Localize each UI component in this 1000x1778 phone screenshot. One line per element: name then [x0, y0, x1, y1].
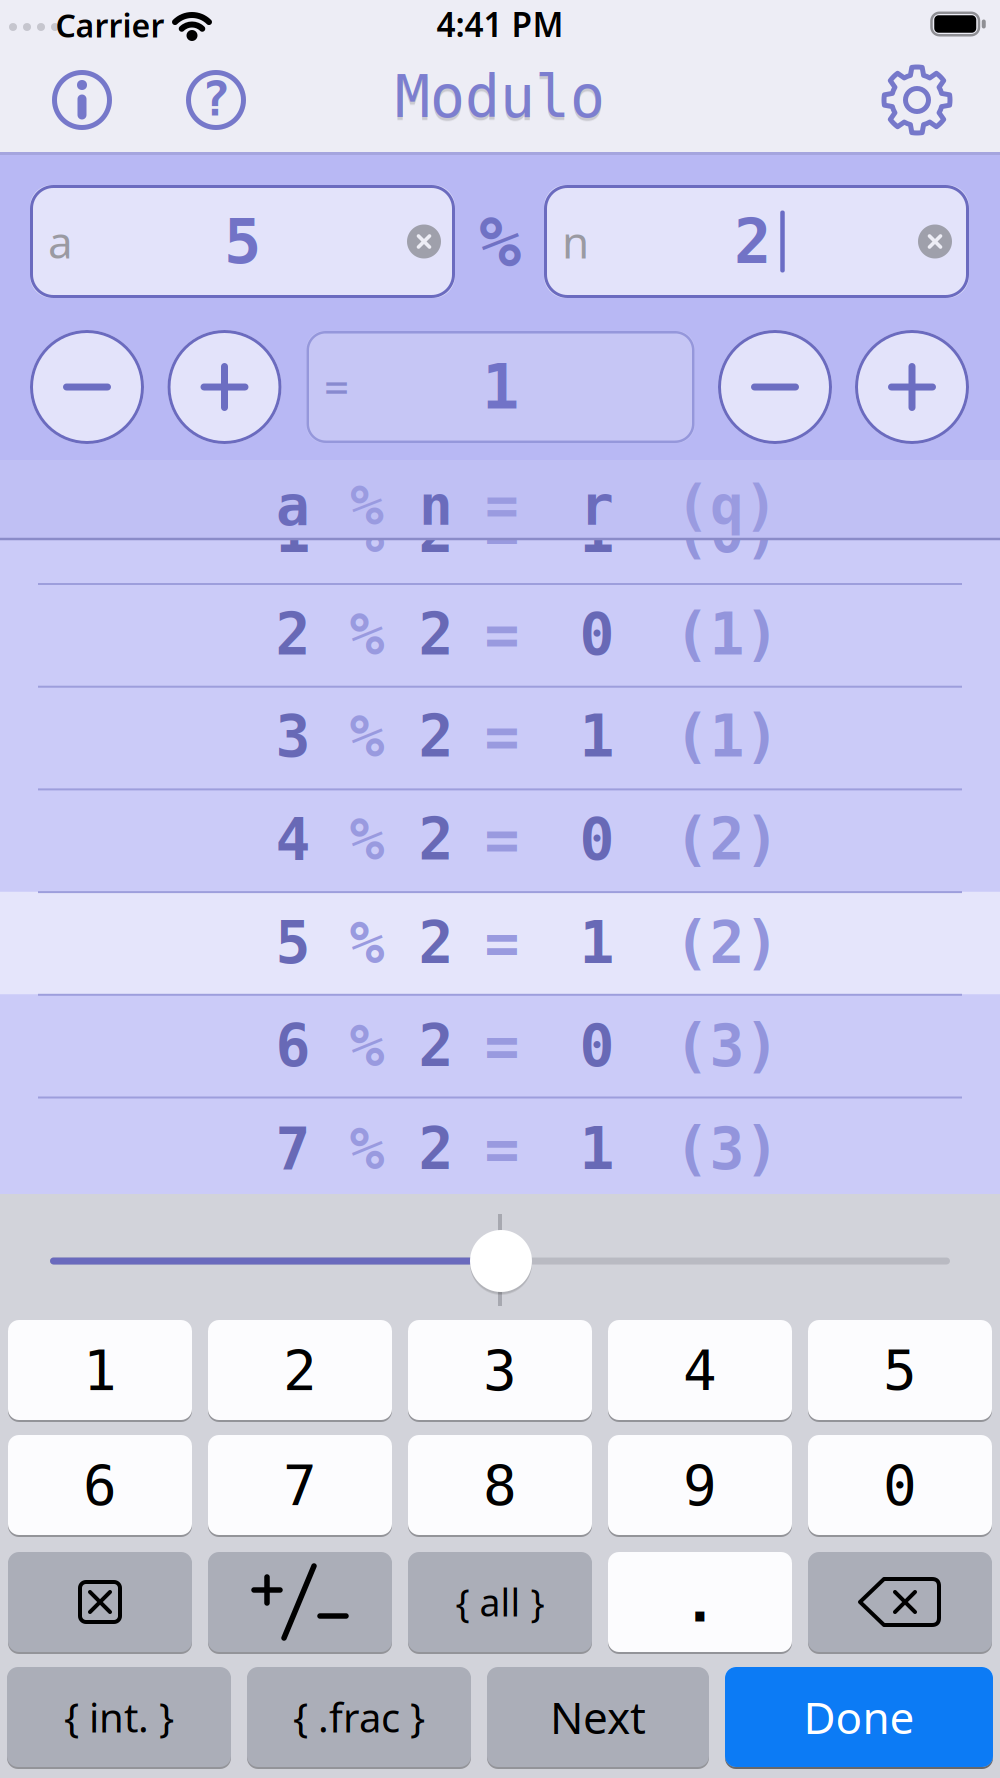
staticText: (2) [674, 909, 779, 977]
button[interactable]: Toggle sign [208, 1552, 392, 1652]
staticText: % [349, 498, 384, 566]
button[interactable]: Clear [918, 224, 952, 258]
staticText: 4 [683, 1337, 717, 1403]
button[interactable]: Settings [880, 63, 954, 137]
staticText: 0 [579, 806, 614, 873]
staticText: (3) [674, 1115, 779, 1183]
staticText: 0 [579, 601, 614, 668]
staticText: 2 [283, 1337, 317, 1403]
staticText: 8 [483, 1452, 517, 1518]
staticText: % [349, 1115, 384, 1183]
button[interactable]: Increase a [167, 330, 281, 444]
staticText: 5 [883, 1337, 917, 1403]
staticText: (2) [674, 806, 779, 873]
button[interactable]: n value [544, 185, 969, 298]
staticText: 2 [418, 703, 453, 770]
staticText: (0) [674, 498, 779, 566]
staticText: 3 [483, 1337, 517, 1403]
button[interactable]: Done [725, 1667, 993, 1767]
staticText: 0 [883, 1452, 917, 1518]
staticText: 7 [275, 1115, 310, 1183]
staticText: = [484, 1012, 519, 1080]
staticText: r [580, 472, 614, 538]
button[interactable]: { all } [408, 1552, 592, 1652]
button[interactable]: 8 [408, 1435, 592, 1535]
button[interactable]: 3 [408, 1320, 592, 1420]
staticText: { all } [455, 1577, 544, 1627]
staticText: ? [201, 71, 230, 127]
staticText: % [349, 1012, 384, 1080]
staticText: 2 [418, 498, 453, 566]
staticText: Done [803, 1688, 914, 1746]
staticText: = [485, 472, 519, 538]
button[interactable]: Decrease a [30, 330, 144, 444]
staticText: 1 [579, 703, 614, 770]
staticText: . [683, 1569, 717, 1635]
button[interactable]: 4 [608, 1320, 792, 1420]
staticText: = [484, 703, 519, 770]
staticText: 1 [579, 498, 614, 566]
staticText: 5 [224, 205, 261, 278]
staticText: n [419, 472, 453, 538]
staticText: 2 [418, 806, 453, 873]
button[interactable]: 6 [8, 1435, 192, 1535]
staticText: { .frac } [293, 1690, 425, 1743]
staticText: 6 [83, 1452, 117, 1518]
staticText: 2 [734, 205, 771, 278]
staticText: Carrier [55, 4, 164, 46]
button[interactable]: Delete [808, 1552, 992, 1652]
button[interactable]: Clear [407, 224, 441, 258]
button[interactable]: Info [50, 68, 114, 132]
staticText: = [484, 909, 519, 977]
staticText: % [479, 201, 521, 283]
button[interactable]: Increase n [855, 330, 969, 444]
staticText: 0 [579, 1012, 614, 1080]
staticText: 2 [418, 1115, 453, 1183]
staticText: (q) [676, 472, 778, 538]
button[interactable]: Next [487, 1667, 709, 1767]
button[interactable]: 5 [808, 1320, 992, 1420]
button[interactable]: a value [30, 185, 455, 298]
staticText: Next [550, 1688, 646, 1746]
staticText: % [349, 909, 384, 977]
staticText: Modulo [395, 63, 605, 131]
staticText: % [350, 472, 384, 538]
button[interactable]: Clear entry [8, 1552, 192, 1652]
staticText: 1 [579, 1115, 614, 1183]
button[interactable]: 9 [608, 1435, 792, 1535]
staticText: 9 [683, 1452, 717, 1518]
staticText: = [324, 364, 348, 410]
staticText: 4 [275, 806, 310, 873]
staticText: = [484, 1115, 519, 1183]
staticText: (1) [674, 601, 779, 668]
staticText: 4:41 PM [436, 2, 563, 46]
staticText: n [562, 212, 589, 271]
staticText: = [484, 806, 519, 873]
staticText: = [484, 601, 519, 668]
staticText: 1 [83, 1337, 117, 1403]
button[interactable]: 2 [208, 1320, 392, 1420]
button[interactable]: Decrease n [718, 330, 832, 444]
button[interactable]: . [608, 1552, 792, 1652]
staticText: (1) [674, 703, 779, 770]
staticText: 1 [275, 498, 310, 566]
staticText: 2 [418, 601, 453, 668]
staticText: 2 [418, 1012, 453, 1080]
button[interactable]: 1 [8, 1320, 192, 1420]
button[interactable]: 0 [808, 1435, 992, 1535]
button[interactable]: Slider [470, 1230, 532, 1292]
staticText: 5 [275, 909, 310, 977]
staticText: 1 [579, 909, 614, 977]
staticText: a [276, 472, 310, 538]
staticText: % [349, 601, 384, 668]
staticText: % [349, 806, 384, 873]
button[interactable]: 7 [208, 1435, 392, 1535]
staticText: 2 [275, 601, 310, 668]
staticText: 2 [418, 909, 453, 977]
staticText: = [484, 498, 519, 566]
button[interactable]: Help [184, 68, 248, 132]
staticText: (3) [674, 1012, 779, 1080]
button[interactable]: { .frac } [247, 1667, 471, 1767]
staticText: { int. } [64, 1690, 174, 1743]
button[interactable]: { int. } [7, 1667, 231, 1767]
